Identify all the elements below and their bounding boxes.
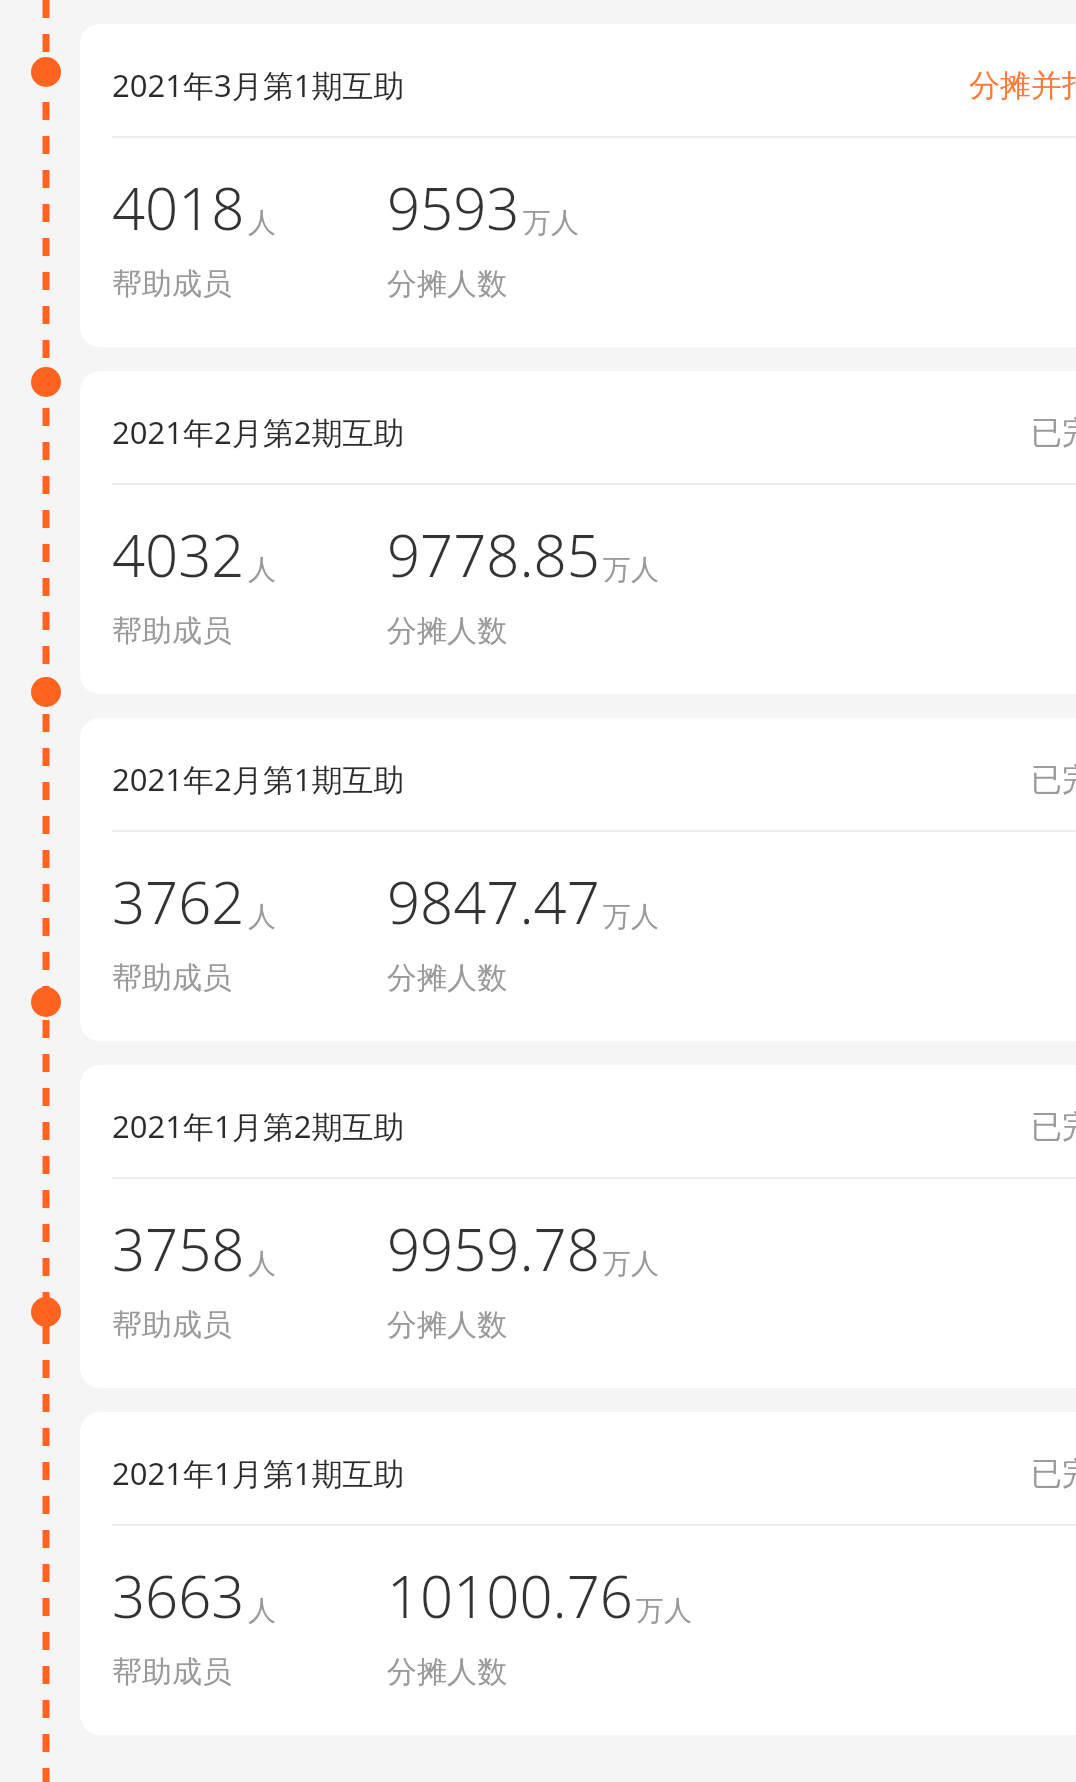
staticText: 万人 <box>603 1246 659 1281</box>
staticText: 2021年2月第1期互助 <box>112 758 405 800</box>
staticText: 帮助成员 <box>112 1653 232 1691</box>
button[interactable]: 分摊并打款 <box>969 66 1076 105</box>
staticText: 已完成 <box>1031 1454 1076 1493</box>
staticText: 人 <box>248 1593 276 1628</box>
staticText: 人 <box>248 205 276 240</box>
button[interactable]: 2021年2月第1期互助 <box>80 718 1076 1041</box>
staticText: 2021年1月第1期互助 <box>112 1452 405 1494</box>
staticText: 帮助成员 <box>112 612 232 650</box>
staticText: 3758 <box>112 1209 245 1288</box>
button[interactable]: 2021年2月第2期互助 <box>80 371 1076 694</box>
staticText: 人 <box>248 899 276 934</box>
staticText: 9959.78 <box>387 1209 600 1288</box>
staticText: 帮助成员 <box>112 265 232 303</box>
staticText: 3663 <box>112 1556 245 1635</box>
staticText: 分摊人数 <box>387 612 507 650</box>
staticText: 3762 <box>112 862 245 941</box>
staticText: 9778.85 <box>387 515 600 594</box>
staticText: 帮助成员 <box>112 959 232 997</box>
staticText: 9847.47 <box>387 862 600 941</box>
staticText: 万人 <box>603 552 659 587</box>
staticText: 万人 <box>523 205 579 240</box>
button[interactable]: 2021年1月第1期互助 <box>80 1412 1076 1735</box>
staticText: 已完成 <box>1031 413 1076 452</box>
staticText: 分摊并打款 <box>969 66 1076 105</box>
staticText: 人 <box>248 552 276 587</box>
staticText: 2021年3月第1期互助 <box>112 64 405 106</box>
staticText: 已完成 <box>1031 760 1076 799</box>
staticText: 分摊人数 <box>387 265 507 303</box>
staticText: 分摊人数 <box>387 1306 507 1344</box>
button[interactable]: 2021年3月第1期互助 <box>80 24 1076 347</box>
staticText: 分摊人数 <box>387 1653 507 1691</box>
button[interactable]: 2021年1月第2期互助 <box>80 1065 1076 1388</box>
staticText: 万人 <box>636 1593 692 1628</box>
staticText: 万人 <box>603 899 659 934</box>
staticText: 2021年2月第2期互助 <box>112 411 405 453</box>
staticText: 分摊人数 <box>387 959 507 997</box>
staticText: 人 <box>248 1246 276 1281</box>
staticText: 4032 <box>112 515 245 594</box>
staticText: 帮助成员 <box>112 1306 232 1344</box>
staticText: 9593 <box>387 168 520 247</box>
staticText: 2021年1月第2期互助 <box>112 1105 405 1147</box>
staticText: 已完成 <box>1031 1107 1076 1146</box>
staticText: 10100.76 <box>387 1556 633 1635</box>
staticText: 4018 <box>112 168 245 247</box>
